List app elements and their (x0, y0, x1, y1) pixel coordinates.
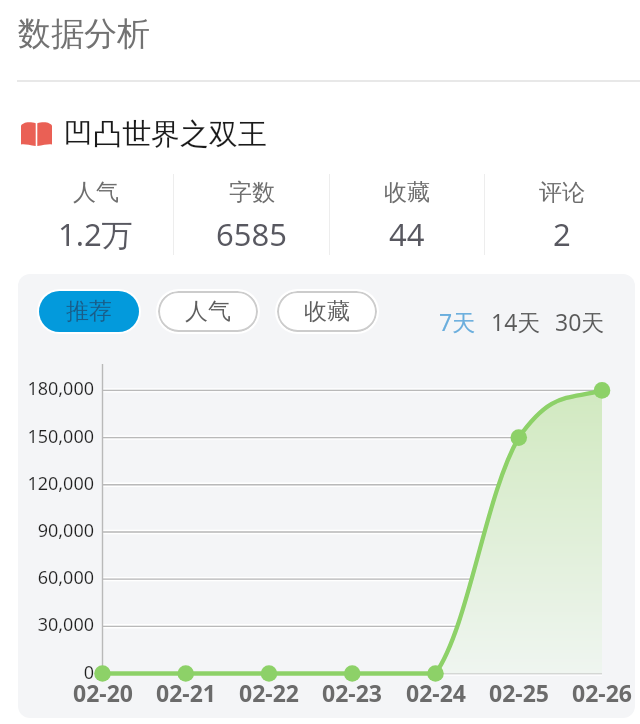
button[interactable]: 人气 (156, 289, 260, 334)
staticText: 02-22 (229, 677, 309, 708)
staticText: 180,000 (20, 376, 94, 401)
staticText: 评论 (539, 178, 585, 207)
staticText: 30天 (555, 306, 605, 337)
staticText: 14天 (491, 306, 541, 337)
staticText: 字数 (229, 178, 275, 207)
staticText: 90,000 (20, 518, 94, 543)
staticText: 人气 (185, 297, 231, 326)
button[interactable]: 30天 (555, 306, 605, 337)
staticText: 推荐 (66, 297, 112, 326)
staticText: 02-26 (562, 677, 635, 708)
button[interactable]: 收藏 (329, 170, 484, 260)
staticText: 02-25 (479, 677, 559, 708)
button[interactable]: 收藏 (275, 289, 379, 334)
staticText: 1.2万 (58, 213, 133, 255)
staticText: 6585 (216, 213, 287, 255)
staticText: 02-20 (63, 677, 143, 708)
staticText: 02-23 (312, 677, 392, 708)
staticText: 120,000 (20, 471, 94, 496)
staticText: 44 (389, 213, 425, 255)
staticText: 7天 (439, 306, 476, 337)
button[interactable]: 14天 (491, 306, 541, 337)
staticText: 02-24 (396, 677, 476, 708)
button[interactable]: 7天 (439, 306, 476, 337)
staticText: 人气 (73, 178, 119, 207)
button[interactable]: 字数 (173, 170, 329, 260)
staticText: 凹凸世界之双王 (64, 116, 267, 153)
staticText: 数据分析 (18, 13, 150, 55)
button[interactable]: 评论 (484, 170, 640, 260)
staticText: 0 (20, 660, 94, 685)
staticText: 30,000 (20, 612, 94, 637)
staticText: 收藏 (304, 297, 350, 326)
staticText: 60,000 (20, 565, 94, 590)
button[interactable]: 人气 (18, 170, 173, 260)
staticText: 收藏 (384, 178, 430, 207)
button[interactable]: 推荐 (37, 289, 141, 334)
staticText: 150,000 (20, 424, 94, 449)
staticText: 2 (553, 213, 571, 255)
staticText: 02-21 (146, 677, 226, 708)
